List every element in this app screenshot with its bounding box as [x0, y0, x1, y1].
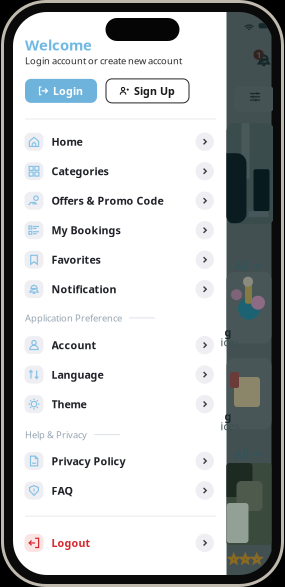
staticText: 1 [256, 48, 261, 61]
staticText: Favorites [51, 253, 100, 267]
staticText: Notification [51, 282, 116, 296]
staticText: Language [51, 367, 103, 382]
staticText: Categories [51, 164, 108, 178]
staticText: g [224, 325, 231, 339]
button[interactable]: Sign Up [106, 79, 189, 103]
staticText: Theme [51, 397, 86, 411]
staticText: Privacy Policy [51, 454, 125, 468]
button[interactable]: My Bookings [13, 215, 228, 245]
button[interactable]: Account [13, 330, 228, 360]
button[interactable]: Favorites [13, 245, 228, 274]
staticText: g [224, 409, 231, 423]
button[interactable]: Language [13, 360, 228, 389]
button[interactable]: Logout [13, 528, 228, 558]
button[interactable]: Offers & Promo Code [13, 186, 228, 215]
staticText: Sign Up [134, 84, 175, 98]
staticText: My Bookings [51, 223, 120, 237]
staticText: Logout [51, 536, 90, 550]
button[interactable]: Privacy Policy [13, 446, 228, 476]
button[interactable]: Theme [13, 389, 228, 419]
staticText: ices [220, 335, 239, 349]
staticText: All [234, 258, 248, 274]
button[interactable]: Home [13, 127, 228, 156]
button[interactable]: Login [25, 79, 97, 103]
staticText: Offers & Promo Code [51, 194, 163, 208]
staticText: FAQ [51, 483, 72, 498]
staticText: Account [51, 338, 96, 352]
staticText: Home [51, 135, 82, 149]
staticText: Help & Privacy [25, 428, 87, 441]
staticText: ices [220, 419, 239, 433]
staticText: Login [53, 84, 83, 98]
staticText: Login account or create new account [25, 54, 182, 67]
staticText: Welcome [25, 35, 92, 54]
button[interactable]: FAQ [13, 476, 228, 505]
button[interactable]: Categories [13, 156, 228, 186]
button[interactable]: Notification [13, 274, 228, 304]
staticText: Application Preference [25, 312, 122, 324]
staticText: All [234, 446, 248, 462]
